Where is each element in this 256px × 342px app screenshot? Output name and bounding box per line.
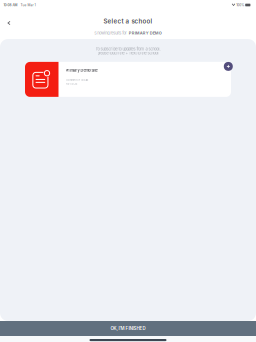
staticText: To subscribe to updates from a school, [95,46,160,51]
button[interactable]: Primary Demo Site [25,62,231,97]
staticText: PRIMARY DEMO [129,31,162,35]
staticText: please touch the + next to the school [97,51,158,55]
staticText: OK, I'M FINISHED [110,326,145,331]
button[interactable]: Back [0,14,19,32]
staticText: 100% [235,3,245,7]
staticText: Tue Mar 1 [18,3,36,7]
staticText: Commerce Road [66,78,89,81]
staticText: Primary Demo Site [66,68,98,73]
staticText: Showing results for [94,31,127,35]
button[interactable]: OK, I'M FINISHED [0,321,256,336]
staticText: 10:08 AM [4,3,18,7]
staticText: PR1 0UX [66,82,78,85]
button[interactable]: Subscribe to this school [224,62,233,71]
staticText: Select a school [103,18,152,25]
